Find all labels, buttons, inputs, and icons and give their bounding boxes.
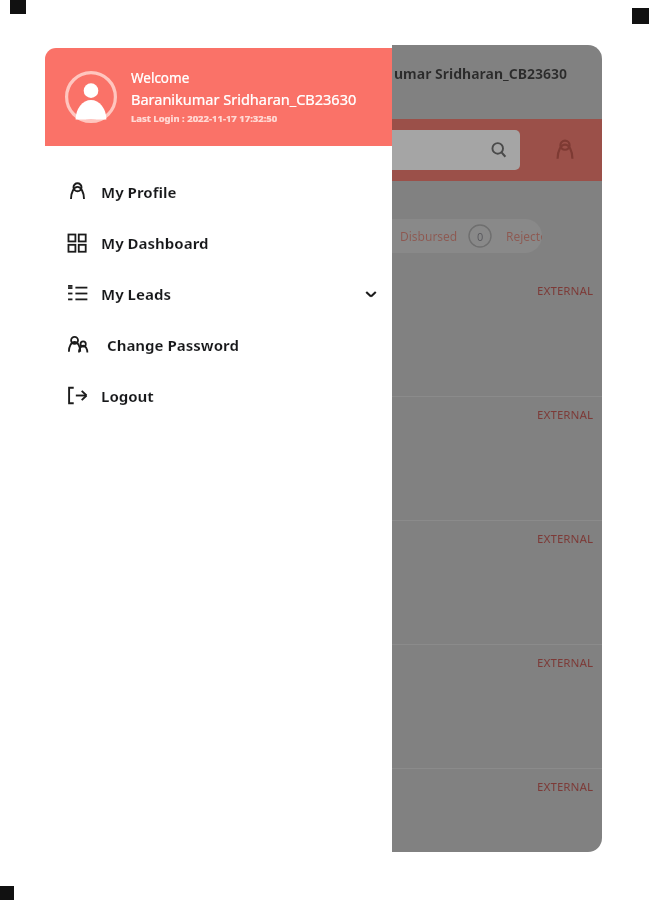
button[interactable]: EXTERNAL: [392, 520, 602, 644]
staticText: Logout: [101, 386, 154, 406]
staticText: Disbursed: [400, 228, 458, 244]
button[interactable]: Search: [392, 130, 520, 170]
staticText: 0: [477, 229, 484, 244]
button[interactable]: Profile: [547, 132, 583, 168]
button[interactable]: My Profile: [45, 166, 392, 217]
button[interactable]: EXTERNAL: [392, 644, 602, 768]
button[interactable]: EXTERNAL: [392, 768, 602, 852]
staticText: My Leads: [101, 284, 171, 304]
staticText: EXTERNAL: [537, 779, 594, 795]
other: Expand: [364, 287, 378, 301]
button[interactable]: Welcome: [45, 48, 392, 146]
staticText: EXTERNAL: [537, 655, 594, 671]
staticText: My Dashboard: [101, 233, 209, 253]
button[interactable]: Disbursed: [392, 219, 542, 253]
button[interactable]: Logout: [45, 370, 392, 421]
button[interactable]: My Leads: [45, 268, 392, 319]
button[interactable]: My Dashboard: [45, 217, 392, 268]
staticText: Change Password: [107, 335, 239, 355]
staticText: umar Sridharan_CB23630: [394, 64, 568, 83]
staticText: EXTERNAL: [537, 531, 594, 547]
button[interactable]: EXTERNAL: [392, 396, 602, 520]
staticText: Baranikumar Sridharan_CB23630: [131, 89, 357, 109]
staticText: EXTERNAL: [537, 283, 594, 299]
staticText: EXTERNAL: [537, 407, 594, 423]
staticText: Welcome: [131, 69, 190, 87]
staticText: Last Login : 2022-11-17 17:32:50: [131, 112, 278, 125]
button[interactable]: Change Password: [45, 319, 392, 370]
staticText: My Profile: [101, 182, 177, 202]
button[interactable]: EXTERNAL: [392, 272, 602, 396]
staticText: Rejected: [506, 228, 542, 244]
other: Search: [491, 142, 507, 158]
